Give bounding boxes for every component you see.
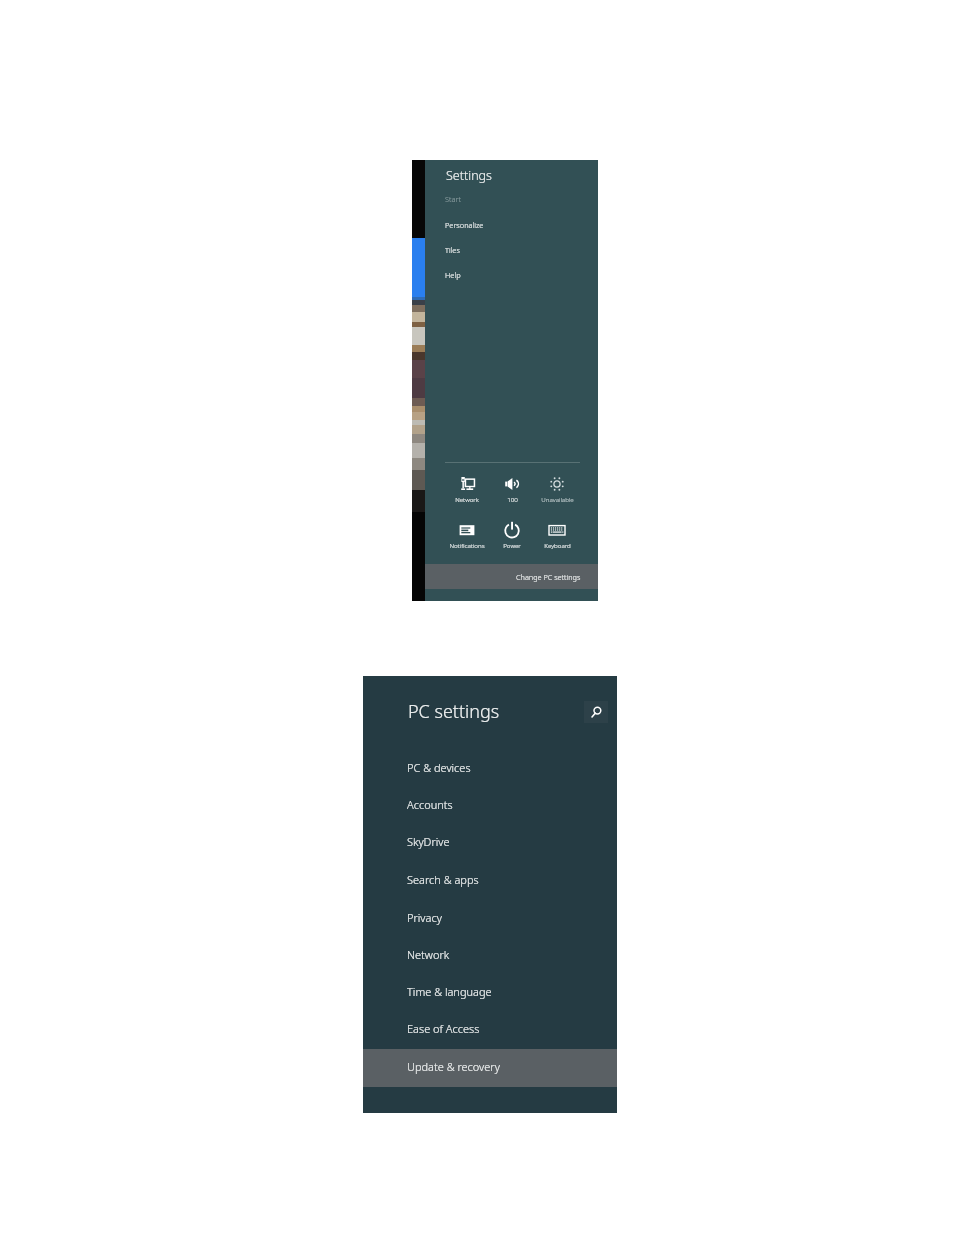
button[interactable]: Time & language <box>363 974 617 1012</box>
button[interactable]: Accounts <box>363 787 617 825</box>
staticText: Tiles <box>445 245 460 255</box>
staticText: Notifications <box>449 541 485 549</box>
staticText: Change PC settings <box>516 572 581 582</box>
button[interactable]: Search <box>584 701 608 723</box>
button[interactable]: Unavailable <box>535 471 579 501</box>
button[interactable]: Personalize <box>445 213 565 237</box>
staticText: PC settings <box>408 699 500 724</box>
button[interactable]: Search & apps <box>363 862 617 900</box>
button[interactable]: Keyboard <box>535 517 579 547</box>
button[interactable]: Privacy <box>363 900 617 938</box>
staticText: SkyDrive <box>407 834 450 849</box>
button[interactable]: Change PC settings <box>425 564 598 589</box>
staticText: Settings <box>446 167 492 184</box>
button[interactable]: Tiles <box>445 238 565 262</box>
button[interactable]: 100 <box>490 471 534 501</box>
staticText: Network <box>455 495 479 503</box>
staticText: Start <box>445 194 461 204</box>
staticText: Help <box>445 270 461 280</box>
button[interactable]: Help <box>445 263 565 287</box>
staticText: Power <box>503 541 521 549</box>
button[interactable]: Notifications <box>445 517 489 547</box>
staticText: PC & devices <box>407 760 471 775</box>
staticText: Time & language <box>407 984 492 999</box>
button[interactable]: PC & devices <box>363 750 617 788</box>
staticText: Keyboard <box>544 541 571 549</box>
staticText: Search & apps <box>407 872 479 887</box>
staticText: Accounts <box>407 797 453 812</box>
staticText: Update & recovery <box>407 1059 500 1074</box>
staticText: 100 <box>507 495 518 503</box>
staticText: Unavailable <box>541 495 574 503</box>
staticText: Ease of Access <box>407 1021 480 1036</box>
button[interactable]: SkyDrive <box>363 824 617 862</box>
staticText: Network <box>407 947 450 962</box>
button[interactable]: Network <box>445 471 489 501</box>
staticText: Privacy <box>407 910 442 925</box>
button[interactable]: Power <box>490 517 534 547</box>
button[interactable]: Start <box>445 187 565 211</box>
button[interactable]: Update & recovery <box>363 1049 617 1087</box>
button[interactable]: Network <box>363 937 617 975</box>
button[interactable]: Ease of Access <box>363 1011 617 1049</box>
staticText: Personalize <box>445 220 484 230</box>
